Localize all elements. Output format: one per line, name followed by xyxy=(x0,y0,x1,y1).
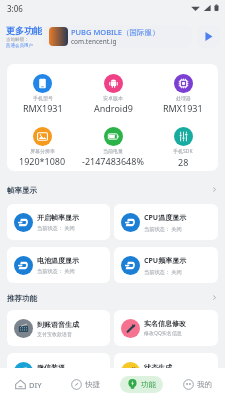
staticText: 功能 xyxy=(141,380,156,389)
staticText: 安卓版本 xyxy=(103,95,123,101)
button[interactable]: 状态生成 xyxy=(114,353,218,389)
staticText: CPU温度显示 xyxy=(144,213,187,223)
button[interactable]: 我的 xyxy=(169,368,225,400)
staticText: RMX1931 xyxy=(163,102,203,114)
button[interactable]: PUBG MOBILE（国际服） xyxy=(44,25,192,48)
staticText: 手机SDK xyxy=(173,148,193,155)
button[interactable]: CPU频率显示 xyxy=(114,247,218,283)
button[interactable]: 开启帧率显示 xyxy=(7,204,110,240)
staticText: Android9 xyxy=(94,102,133,114)
button[interactable]: DIY xyxy=(0,368,57,400)
staticText: 屏幕分辨率 xyxy=(30,148,55,154)
button[interactable]: 微信装逼 xyxy=(7,353,110,389)
staticText: 到账语音生成 xyxy=(37,320,79,329)
staticText: DIY xyxy=(29,380,42,390)
button[interactable]: 处理器 xyxy=(148,74,218,114)
staticText: PUBG MOBILE（国际服） xyxy=(71,27,160,37)
staticText: 电池温度显示 xyxy=(37,256,79,265)
staticText: 3:06 xyxy=(7,3,23,14)
button[interactable]: 快捷 xyxy=(57,368,113,400)
button[interactable]: 屏幕分辨率 xyxy=(7,127,78,167)
staticText: 状态生成 xyxy=(144,363,172,372)
button[interactable]: 手机SDK xyxy=(148,127,218,168)
staticText: 手机型号 xyxy=(33,95,53,101)
staticText: 修改QQ实名信息 xyxy=(144,330,182,337)
staticText: 微信装逼 xyxy=(37,363,65,372)
staticText: 处理器 xyxy=(176,95,191,101)
staticText: 当前状态： 关闭 xyxy=(37,267,75,274)
button[interactable]: 安卓版本 xyxy=(78,74,148,114)
staticText: 快捷 xyxy=(85,380,100,389)
button[interactable]: 当前电量 xyxy=(78,127,148,167)
staticText: 1920*1080 xyxy=(19,155,66,167)
staticText: 当前状态： 关闭 xyxy=(37,224,75,231)
staticText: 我的 xyxy=(197,380,212,389)
staticText: -2147483648% xyxy=(82,155,144,167)
staticText: 实名信息修改 xyxy=(144,319,186,328)
staticText: 自定义状态 xyxy=(144,374,169,380)
button[interactable]: 推荐功能 xyxy=(7,283,218,310)
button[interactable]: 手机型号 xyxy=(7,74,78,114)
button[interactable]: 帧率显示 xyxy=(7,171,218,204)
button[interactable]: CPU温度显示 xyxy=(114,204,218,240)
staticText: 帧率显示 xyxy=(7,186,37,195)
button[interactable]: 实名信息修改 xyxy=(114,310,218,346)
staticText: 普通会员用户 xyxy=(6,43,33,49)
staticText: com.tencent.ig xyxy=(71,37,117,46)
button[interactable]: 到账语音生成 xyxy=(7,310,110,346)
button[interactable]: 电池温度显示 xyxy=(7,247,110,283)
staticText: 当前状态： 关闭 xyxy=(144,225,182,232)
staticText: 推荐功能 xyxy=(7,294,37,303)
staticText: RMX1931 xyxy=(23,102,63,114)
staticText: 当前解锁： xyxy=(6,37,29,43)
staticText: 开启帧率显示 xyxy=(37,213,79,222)
staticText: 更多功能 xyxy=(6,25,42,36)
staticText: 当前电量 xyxy=(103,148,123,154)
button[interactable]: Play xyxy=(197,25,220,48)
button[interactable]: 功能 xyxy=(113,368,169,400)
staticText: CPU频率显示 xyxy=(144,256,187,266)
staticText: 当前状态： 关闭 xyxy=(144,268,182,275)
staticText: 28 xyxy=(178,156,189,168)
staticText: 支付宝收款语音 xyxy=(37,331,72,337)
